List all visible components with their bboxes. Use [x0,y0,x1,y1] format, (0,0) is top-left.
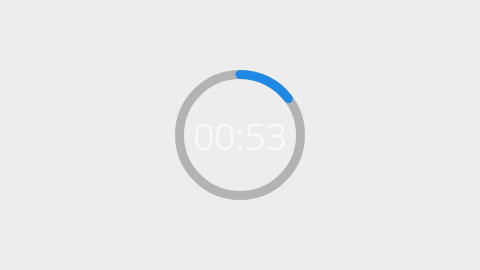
staticText: 00:53 [193,110,287,160]
button[interactable]: Timer 00:53 remaining [170,65,310,205]
